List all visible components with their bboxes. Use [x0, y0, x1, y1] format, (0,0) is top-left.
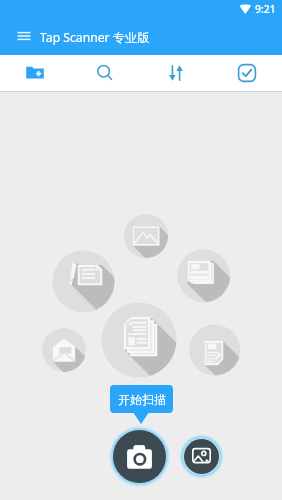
staticText: 开始扫描 — [118, 392, 166, 407]
button[interactable]: Menu — [12, 24, 36, 48]
button[interactable]: Import image — [184, 439, 219, 474]
button[interactable]: Search — [70, 55, 140, 91]
button[interactable]: New folder — [0, 55, 70, 91]
staticText: Tap Scanner 专业版 — [40, 29, 150, 46]
button[interactable]: Sort — [140, 55, 211, 91]
button[interactable]: 开始扫描 — [110, 385, 173, 413]
button[interactable]: Select all — [211, 55, 282, 91]
staticText: 9:21 — [255, 2, 276, 16]
button[interactable]: Scan with camera — [113, 430, 166, 483]
